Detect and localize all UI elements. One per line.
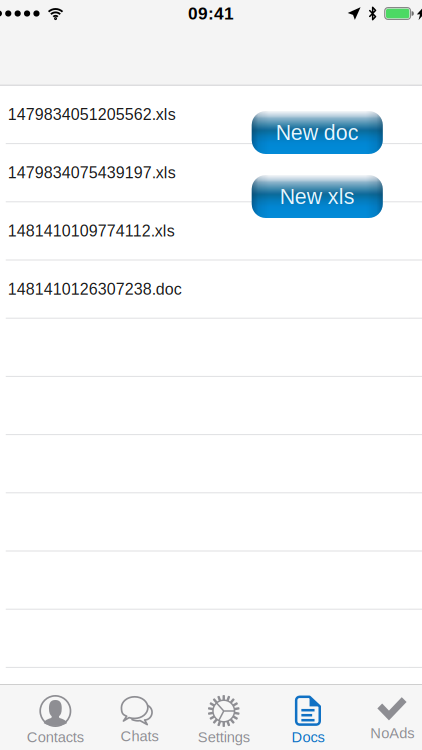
button[interactable]: 1481410109774112.xls bbox=[0, 202, 422, 260]
staticText: New xls bbox=[280, 185, 355, 208]
button[interactable]: NoAds bbox=[350, 685, 422, 750]
staticText: Contacts bbox=[27, 729, 84, 745]
staticText: 09:41 bbox=[188, 4, 234, 23]
staticText: 1481410109774112.xls bbox=[8, 222, 175, 240]
staticText: Settings bbox=[198, 729, 250, 745]
staticText: 1481410126307238.doc bbox=[8, 280, 182, 298]
staticText: NoAds bbox=[370, 725, 414, 741]
staticText: 1479834051205562.xls bbox=[8, 106, 176, 123]
button[interactable]: 1479834075439197.xls bbox=[0, 144, 422, 202]
button[interactable]: Docs bbox=[266, 685, 350, 750]
button[interactable]: New doc bbox=[252, 111, 383, 154]
button[interactable]: Contacts bbox=[13, 685, 97, 750]
button[interactable]: 1481410126307238.doc bbox=[0, 260, 422, 319]
staticText: Chats bbox=[120, 728, 158, 744]
button[interactable]: Settings bbox=[182, 685, 266, 750]
button[interactable]: Chats bbox=[97, 685, 182, 750]
staticText: Docs bbox=[291, 729, 324, 745]
staticText: 1479834075439197.xls bbox=[8, 164, 176, 182]
button[interactable]: New xls bbox=[252, 175, 383, 218]
button[interactable]: 1479834051205562.xls bbox=[0, 86, 422, 144]
staticText: New doc bbox=[276, 121, 359, 144]
